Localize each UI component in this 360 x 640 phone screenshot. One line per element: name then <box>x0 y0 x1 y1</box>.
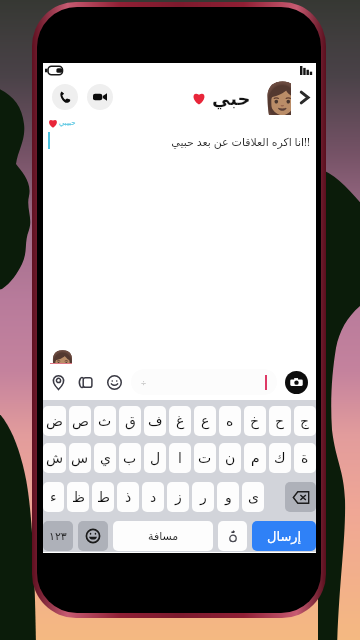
button[interactable]: ر <box>192 482 214 512</box>
staticText: ز <box>175 489 182 505</box>
staticText: غ <box>176 413 185 429</box>
staticText: ه <box>226 413 234 429</box>
staticText: و <box>225 489 232 505</box>
staticText: ص <box>72 413 89 429</box>
staticText: ة <box>301 450 309 466</box>
button[interactable]: ث <box>94 406 116 436</box>
button[interactable]: ع <box>194 406 216 436</box>
button[interactable]: ض <box>43 406 66 436</box>
button[interactable]: Camera <box>285 371 308 394</box>
staticText: ر <box>200 489 207 505</box>
button[interactable]: س <box>69 443 91 473</box>
button[interactable]: خ <box>244 406 266 436</box>
button[interactable]: Stickers <box>77 373 95 391</box>
staticText: حبيبي <box>59 119 76 127</box>
button[interactable]: ي <box>94 443 116 473</box>
button[interactable]: ا <box>169 443 191 473</box>
button[interactable]: ط <box>92 482 114 512</box>
staticText: حبي <box>212 88 251 109</box>
button[interactable]: ك <box>269 443 291 473</box>
staticText: س <box>71 450 89 466</box>
staticText: ع <box>201 413 210 429</box>
button[interactable]: Diacritics <box>218 521 247 551</box>
button[interactable]: Location <box>49 373 67 391</box>
staticText: ١٢٣ <box>49 530 67 543</box>
button[interactable]: Emoji keyboard <box>78 521 108 551</box>
staticText: ن <box>225 450 236 466</box>
staticText: ك <box>274 450 286 466</box>
staticText: مسافة <box>148 530 179 543</box>
staticText: ا <box>178 450 182 466</box>
button[interactable]: ز <box>167 482 189 512</box>
staticText: ق <box>125 413 136 429</box>
button[interactable]: Video call <box>87 84 113 110</box>
staticText: ى <box>248 489 259 505</box>
button[interactable]: Call <box>52 84 78 110</box>
button[interactable]: ة <box>294 443 316 473</box>
staticText: خ <box>250 413 260 429</box>
staticText: ظ <box>72 489 85 505</box>
button[interactable]: ف <box>144 406 166 436</box>
staticText: ث <box>98 413 112 429</box>
button[interactable]: Contact avatar <box>263 80 291 115</box>
button[interactable]: و <box>217 482 239 512</box>
staticText: ش <box>46 450 64 466</box>
button[interactable]: ذ <box>117 482 139 512</box>
staticText: ذ <box>125 489 132 505</box>
button[interactable]: إرسال <box>252 521 316 551</box>
button[interactable]: ١٢٣ <box>43 521 73 551</box>
button[interactable]: ن <box>219 443 241 473</box>
staticText: إرسال <box>267 529 302 544</box>
button[interactable]: ÷ <box>131 369 277 395</box>
button[interactable]: مسافة <box>113 521 213 551</box>
button[interactable]: ل <box>144 443 166 473</box>
staticText: ء <box>50 489 57 505</box>
staticText: ÷ <box>141 376 147 388</box>
button[interactable]: Emoji <box>105 373 123 391</box>
button[interactable]: ج <box>294 406 316 436</box>
staticText: 👩🏽 <box>50 349 72 363</box>
button[interactable]: ظ <box>67 482 89 512</box>
staticText: ل <box>150 450 161 466</box>
staticText: ج <box>300 413 310 429</box>
button[interactable]: ح <box>269 406 291 436</box>
button[interactable]: ص <box>69 406 91 436</box>
button[interactable]: Backspace <box>285 482 316 512</box>
button[interactable]: ق <box>119 406 141 436</box>
staticText: د <box>150 489 157 505</box>
staticText: ف <box>148 413 163 429</box>
button[interactable]: ء <box>43 482 64 512</box>
button[interactable]: ى <box>242 482 264 512</box>
staticText: انا اكره العلاقات عن بعد حبيي!! <box>43 134 310 149</box>
button[interactable]: ب <box>119 443 141 473</box>
staticText: م <box>251 450 260 466</box>
staticText: ط <box>97 489 110 505</box>
button[interactable]: Open profile <box>296 89 312 105</box>
button[interactable]: د <box>142 482 164 512</box>
staticText: 👩🏽 <box>263 80 291 115</box>
staticText: ب <box>123 450 137 466</box>
button[interactable]: ت <box>194 443 216 473</box>
staticText: ت <box>198 450 212 466</box>
staticText: ح <box>275 413 285 429</box>
button[interactable]: غ <box>169 406 191 436</box>
button[interactable]: ش <box>43 443 66 473</box>
staticText: ي <box>100 450 111 466</box>
button[interactable]: ه <box>219 406 241 436</box>
staticText: ض <box>46 413 63 429</box>
button[interactable]: م <box>244 443 266 473</box>
